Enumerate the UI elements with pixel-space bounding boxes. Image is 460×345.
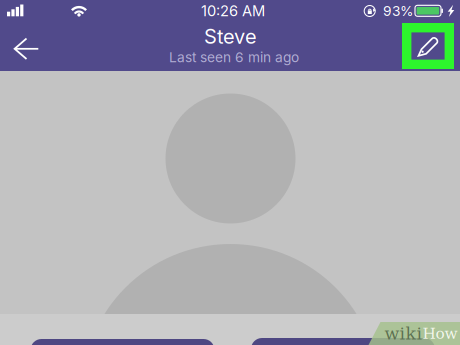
button[interactable]: Back xyxy=(0,27,52,69)
staticText: 93% xyxy=(383,3,413,19)
staticText: Steve xyxy=(204,24,257,49)
staticText: wiki xyxy=(384,323,422,344)
staticText: 10:26 AM xyxy=(201,2,265,20)
staticText: How xyxy=(422,325,457,342)
staticText: Last seen 6 min ago xyxy=(169,49,299,65)
button[interactable]: Edit message xyxy=(400,20,456,72)
